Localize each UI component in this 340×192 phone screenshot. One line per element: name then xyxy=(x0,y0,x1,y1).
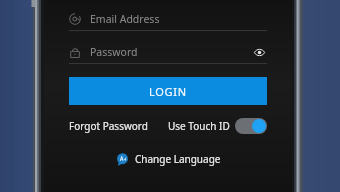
button[interactable]: Use Touch ID xyxy=(168,118,267,134)
button[interactable]: Use Touch ID toggle xyxy=(235,118,267,134)
staticText: LOGIN xyxy=(149,84,187,99)
staticText: Forgot Password xyxy=(69,119,148,133)
button[interactable]: Password xyxy=(69,40,267,65)
staticText: Use Touch ID xyxy=(168,119,230,133)
button[interactable]: Email Address xyxy=(69,7,267,32)
button[interactable]: Show password xyxy=(251,44,267,60)
staticText: Password xyxy=(90,45,138,59)
button[interactable]: LOGIN xyxy=(69,77,267,105)
staticText: Change Language xyxy=(135,152,221,166)
button[interactable]: Change Language xyxy=(69,149,267,169)
staticText: Email Address xyxy=(90,12,160,26)
button[interactable]: Forgot Password xyxy=(69,119,148,133)
